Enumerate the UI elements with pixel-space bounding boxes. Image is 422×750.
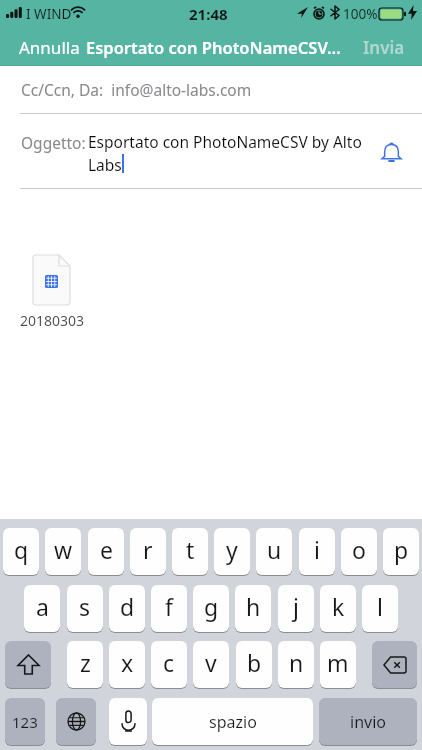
button[interactable]: s — [67, 585, 103, 632]
staticText: t — [186, 534, 195, 565]
staticText: y — [226, 534, 238, 565]
staticText: Annulla — [19, 36, 80, 59]
staticText: h — [246, 591, 261, 622]
button[interactable]: i — [299, 528, 335, 575]
button[interactable]: d — [109, 585, 145, 632]
button[interactable]: y — [214, 528, 250, 575]
button[interactable]: Oggetto: — [0, 113, 422, 188]
staticText: u — [267, 534, 282, 565]
staticText: x — [121, 647, 134, 678]
staticText: r — [143, 534, 153, 565]
staticText: k — [332, 591, 345, 622]
button[interactable]: n — [278, 641, 314, 688]
button[interactable]: u — [256, 528, 292, 575]
button[interactable]: o — [341, 528, 377, 575]
button[interactable] — [5, 641, 51, 688]
staticText: d — [120, 591, 135, 622]
button[interactable]: Annulla — [0, 36, 86, 59]
staticText: Esportato con PhotoNameCSV… — [86, 36, 341, 58]
button[interactable]: v — [193, 641, 229, 688]
staticText: I WIND — [26, 5, 72, 23]
staticText: l — [377, 591, 383, 622]
staticText: w — [54, 534, 73, 565]
staticText: j — [293, 591, 299, 622]
button[interactable]: e — [88, 528, 124, 575]
button[interactable]: m — [320, 641, 356, 688]
staticText: 21:48 — [189, 4, 228, 24]
button[interactable]: Invia — [363, 36, 422, 59]
button[interactable]: j — [278, 585, 314, 632]
staticText: Oggetto: — [21, 132, 86, 153]
staticText: Cc/Ccn, Da: info@alto-labs.com — [21, 79, 252, 100]
staticText: v — [205, 647, 217, 678]
button[interactable]: b — [236, 641, 272, 688]
button[interactable]: 20180303 — [7, 253, 97, 333]
staticText: f — [165, 591, 173, 622]
staticText: q — [14, 534, 29, 565]
staticText: g — [204, 591, 219, 622]
staticText: 100% — [343, 5, 378, 23]
button[interactable]: f — [151, 585, 187, 632]
button[interactable]: l — [362, 585, 398, 632]
button[interactable]: r — [130, 528, 166, 575]
staticText: Invia — [363, 36, 405, 59]
staticText: p — [394, 534, 409, 565]
staticText: s — [79, 591, 91, 622]
button[interactable]: a — [24, 585, 60, 632]
button[interactable]: spazio — [152, 698, 313, 745]
staticText: n — [289, 647, 304, 678]
button[interactable]: w — [45, 528, 81, 575]
staticText: m — [327, 647, 349, 678]
button[interactable]: c — [151, 641, 187, 688]
button[interactable]: invio — [319, 698, 417, 745]
button[interactable]: p — [383, 528, 419, 575]
button[interactable] — [382, 142, 401, 162]
button[interactable]: 123 — [5, 698, 45, 745]
button[interactable]: h — [235, 585, 271, 632]
staticText: e — [100, 534, 113, 565]
staticText: i — [314, 534, 320, 565]
staticText: Esportato con PhotoNameCSV by Alto Labs — [88, 131, 362, 176]
button[interactable]: g — [193, 585, 229, 632]
button[interactable] — [372, 641, 417, 688]
staticText: c — [163, 647, 175, 678]
staticText: spazio — [209, 711, 257, 733]
button[interactable]: k — [320, 585, 356, 632]
button[interactable] — [56, 698, 96, 745]
button[interactable]: x — [109, 641, 145, 688]
button[interactable] — [109, 698, 147, 745]
staticText: invio — [350, 711, 386, 733]
button[interactable]: z — [67, 641, 103, 688]
button[interactable]: Cc/Ccn, Da: info@alto-labs.com — [0, 66, 422, 113]
button[interactable]: q — [3, 528, 39, 575]
staticText: z — [80, 647, 91, 678]
staticText: o — [352, 534, 366, 565]
staticText: a — [36, 591, 49, 622]
staticText: 123 — [12, 712, 38, 732]
button[interactable]: t — [172, 528, 208, 575]
staticText: b — [247, 647, 262, 678]
staticText: 20180303 — [20, 311, 85, 330]
